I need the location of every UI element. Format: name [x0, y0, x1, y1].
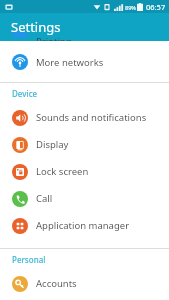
staticText: Device [12, 88, 38, 99]
button[interactable]: Display [0, 131, 169, 158]
staticText: More networks [36, 56, 104, 69]
staticText: Display [36, 138, 69, 151]
button[interactable]: Accounts [0, 270, 169, 297]
staticText: Personal [12, 254, 46, 265]
button[interactable]: Sounds and notifications [0, 104, 169, 131]
staticText: Call [36, 192, 53, 205]
button[interactable]: Lock screen [0, 158, 169, 185]
button[interactable]: More networks [0, 47, 169, 77]
staticText: Accounts [36, 277, 77, 290]
staticText: Printing [36, 35, 72, 41]
staticText: Application manager [36, 219, 130, 232]
staticText: 89% [125, 4, 136, 11]
button[interactable]: Call [0, 185, 169, 212]
staticText: Lock screen [36, 165, 89, 178]
button[interactable]: Application manager [0, 212, 169, 239]
staticText: Settings [11, 18, 61, 36]
staticText: Sounds and notifications [36, 111, 147, 124]
staticText: 06:57 [146, 2, 166, 12]
